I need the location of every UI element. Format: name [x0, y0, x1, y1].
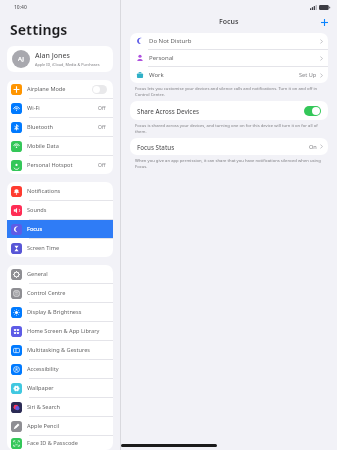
button[interactable]: Airplane Mode — [7, 80, 113, 98]
staticText: Wi-Fi — [27, 104, 98, 112]
staticText: Apple Pencil — [27, 422, 109, 430]
staticText: Work — [149, 71, 299, 79]
staticText: Sounds — [27, 206, 109, 214]
staticText: Off — [98, 124, 106, 131]
staticText: Mobile Data — [27, 142, 109, 150]
staticText: When you give an app permission, it can … — [135, 158, 323, 170]
staticText: AJ — [18, 55, 24, 63]
staticText: General — [27, 270, 109, 278]
button[interactable]: Siri & Search — [7, 398, 113, 416]
button[interactable]: Multitasking & Gestures — [7, 341, 113, 359]
staticText: Notifications — [27, 187, 109, 195]
staticText: Wallpaper — [27, 384, 109, 392]
staticText: On — [309, 143, 317, 151]
staticText: Personal Hotspot — [27, 161, 98, 169]
staticText: Alan Jones — [35, 51, 70, 61]
staticText: Set Up — [299, 71, 317, 79]
button[interactable]: Share Across Devices toggle — [304, 106, 321, 116]
button[interactable]: Personal Hotspot — [7, 156, 113, 174]
button[interactable]: Notifications — [7, 182, 113, 200]
staticText: Focus Status — [137, 143, 309, 151]
button[interactable]: Accessibility — [7, 360, 113, 378]
staticText: Siri & Search — [27, 403, 109, 411]
staticText: Face ID & Passcode — [27, 439, 109, 447]
staticText: Focus — [27, 225, 109, 233]
staticText: Focus — [219, 17, 239, 27]
button[interactable]: Add Focus — [317, 15, 331, 29]
button[interactable]: Sounds — [7, 201, 113, 219]
staticText: 10:40 — [14, 4, 27, 11]
staticText: Personal — [149, 54, 320, 62]
staticText: Settings — [10, 20, 68, 39]
button[interactable]: Focus Status — [130, 138, 328, 155]
staticText: Bluetooth — [27, 123, 98, 131]
button[interactable]: Face ID & Passcode — [7, 436, 113, 450]
button[interactable]: Apple Pencil — [7, 417, 113, 435]
staticText: Off — [98, 105, 106, 112]
button[interactable]: General — [7, 265, 113, 283]
button[interactable]: Home Screen & App Library — [7, 322, 113, 340]
staticText: Home Screen & App Library — [27, 327, 109, 335]
button[interactable]: Display & Brightness — [7, 303, 113, 321]
button[interactable]: Wi-Fi — [7, 99, 113, 117]
button[interactable]: Focus — [7, 220, 113, 238]
button[interactable]: Mobile Data — [7, 137, 113, 155]
button[interactable]: AJ — [7, 46, 113, 72]
button[interactable]: Airplane Mode toggle — [92, 85, 107, 94]
staticText: Airplane Mode — [27, 85, 92, 93]
staticText: Accessibility — [27, 365, 109, 373]
staticText: Focus lets you customise your devices an… — [135, 86, 323, 98]
staticText: Focus is shared across your devices, and… — [135, 123, 323, 135]
staticText: Share Across Devices — [137, 107, 304, 115]
button[interactable]: Wallpaper — [7, 379, 113, 397]
button[interactable]: Work — [130, 67, 328, 83]
staticText: Display & Brightness — [27, 308, 109, 316]
staticText: Do Not Disturb — [149, 37, 320, 45]
button[interactable]: Screen Time — [7, 239, 113, 257]
button[interactable]: Do Not Disturb — [130, 33, 328, 49]
button[interactable]: Personal — [130, 50, 328, 66]
button[interactable]: Share Across Devices — [130, 101, 328, 120]
staticText: Off — [98, 162, 106, 169]
staticText: Control Centre — [27, 289, 109, 297]
button[interactable]: Control Centre — [7, 284, 113, 302]
staticText: Apple ID, iCloud, Media & Purchases — [35, 62, 100, 67]
button[interactable]: Bluetooth — [7, 118, 113, 136]
staticText: Multitasking & Gestures — [27, 346, 109, 354]
staticText: Screen Time — [27, 244, 109, 252]
